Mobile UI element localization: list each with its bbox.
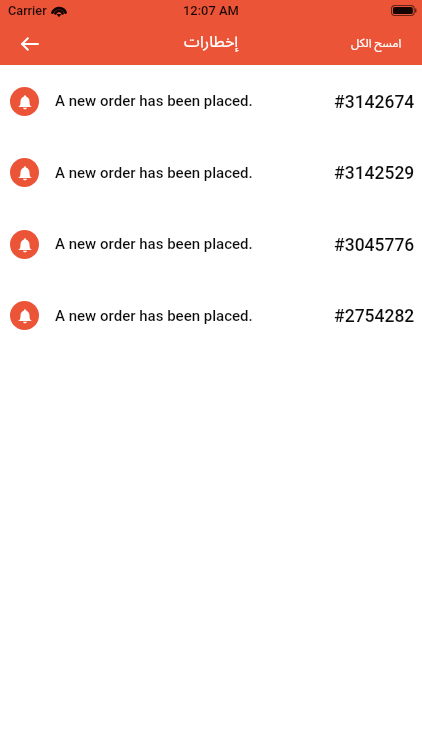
staticText: #3142529 [334, 163, 415, 184]
staticText: #3045776 [334, 235, 415, 256]
staticText: A new order has been placed. [55, 235, 253, 253]
button[interactable]: A new order has been placed. [0, 280, 422, 351]
button[interactable]: امسح الكل [343, 26, 410, 61]
staticText: 12:07 AM [183, 3, 239, 18]
staticText: #3142674 [334, 92, 415, 113]
staticText: #2754282 [334, 306, 415, 327]
staticText: إخطارات [184, 25, 239, 59]
staticText: A new order has been placed. [55, 307, 253, 325]
staticText: امسح الكل [351, 31, 402, 56]
staticText: Carrier [8, 3, 47, 18]
button[interactable]: Back [10, 24, 50, 64]
button[interactable]: A new order has been placed. [0, 137, 422, 208]
button[interactable]: A new order has been placed. [0, 208, 422, 280]
staticText: A new order has been placed. [55, 164, 253, 182]
staticText: A new order has been placed. [55, 92, 253, 110]
button[interactable]: A new order has been placed. [0, 65, 422, 137]
